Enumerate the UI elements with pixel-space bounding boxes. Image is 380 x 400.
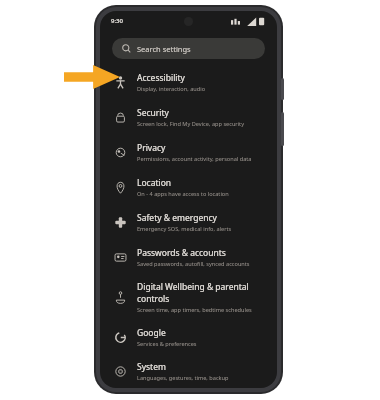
staticText: Emergency SOS, medical info, alerts xyxy=(137,225,232,233)
staticText: Saved passwords, autofill, synced accoun… xyxy=(137,260,250,268)
button[interactable]: Location xyxy=(100,170,277,205)
staticText: Safety & emergency xyxy=(137,212,217,224)
button[interactable]: Security xyxy=(100,100,277,135)
button[interactable]: Google xyxy=(100,320,277,355)
button[interactable]: System xyxy=(100,355,277,388)
staticText: Google xyxy=(137,327,166,339)
staticText: Screen time, app timers, bedtime schedul… xyxy=(137,306,252,314)
button[interactable]: Accessibility xyxy=(100,65,277,100)
staticText: 9:30 xyxy=(111,17,123,25)
button[interactable]: Safety & emergency xyxy=(100,205,277,240)
staticText: Display, interaction, audio xyxy=(137,85,206,93)
staticText: Privacy xyxy=(137,142,166,154)
button[interactable]: Privacy xyxy=(100,135,277,170)
staticText: Languages, gestures, time, backup xyxy=(137,374,229,382)
staticText: Search settings xyxy=(137,44,191,54)
button[interactable]: Passwords & accounts xyxy=(100,240,277,275)
other: Pointer to Accessibility xyxy=(64,65,120,89)
staticText: System xyxy=(137,361,166,373)
staticText: Services & preferences xyxy=(137,340,197,348)
staticText: Digital Wellbeing & parental xyxy=(137,281,249,293)
staticText: Accessibility xyxy=(137,72,185,84)
staticText: Location xyxy=(137,177,172,189)
staticText: On - 4 apps have access to location xyxy=(137,190,229,198)
staticText: controls xyxy=(137,293,170,305)
staticText: Passwords & accounts xyxy=(137,247,226,259)
button[interactable]: Digital Wellbeing & parental xyxy=(100,275,277,320)
staticText: Security xyxy=(137,107,169,119)
button[interactable]: Search settings xyxy=(112,38,265,59)
staticText: Screen lock, Find My Device, app securit… xyxy=(137,120,244,128)
staticText: Permissions, account activity, personal … xyxy=(137,155,252,163)
